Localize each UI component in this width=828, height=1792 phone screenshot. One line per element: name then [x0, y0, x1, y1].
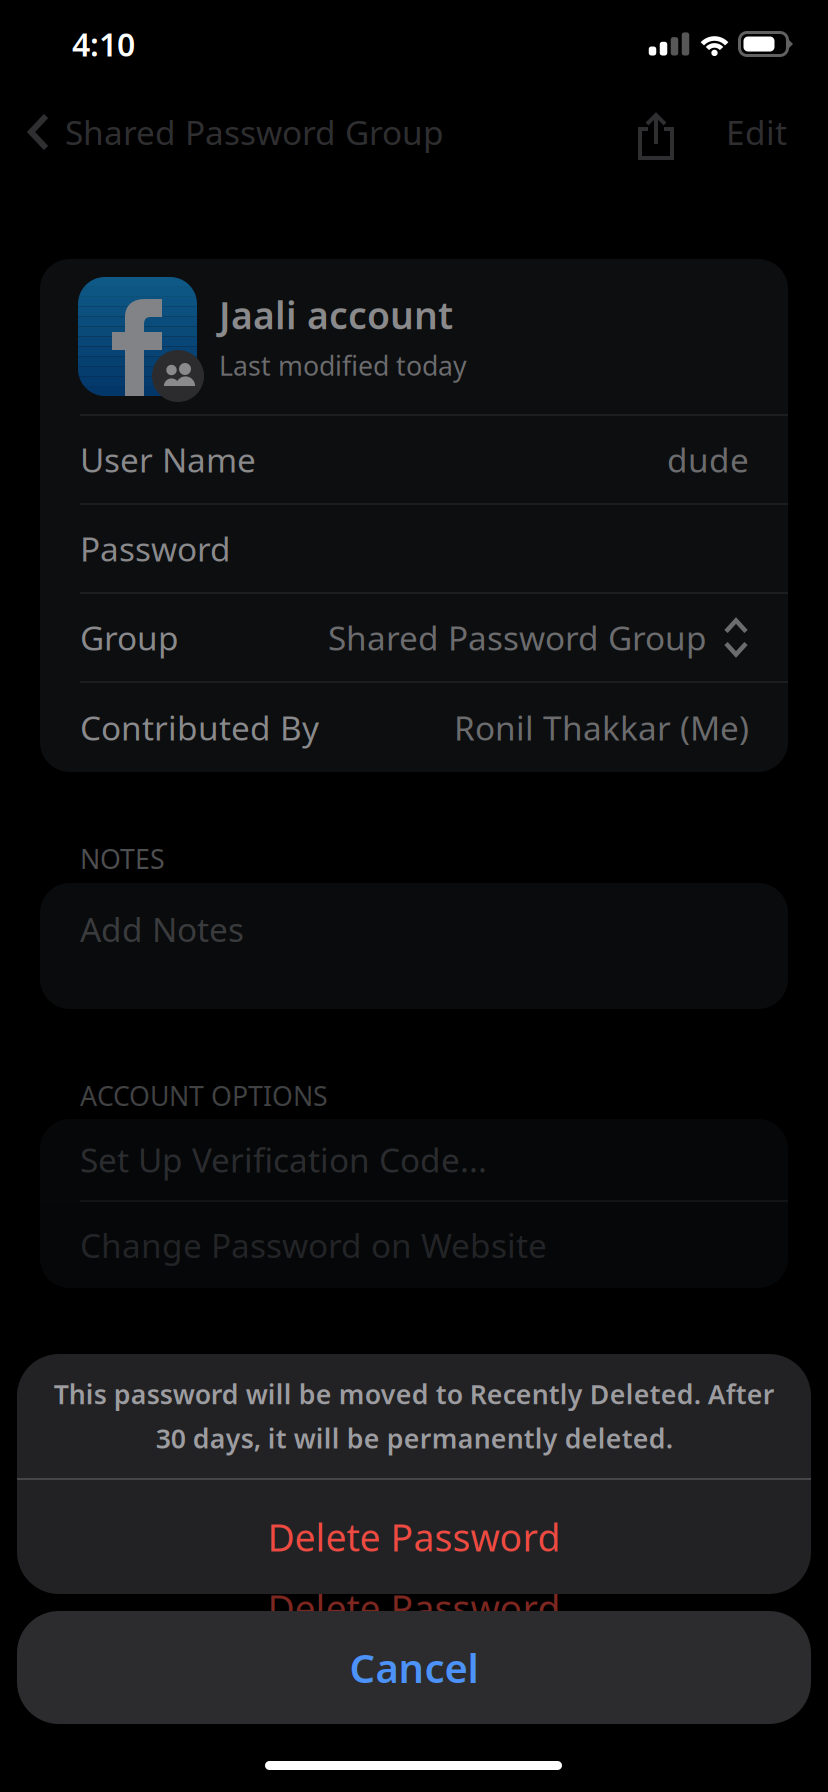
staticText: Edit	[726, 110, 787, 154]
button[interactable]: Change Password on Website	[40, 1202, 788, 1288]
button[interactable]: Group	[40, 594, 788, 681]
staticText: 4:10	[72, 23, 135, 65]
staticText: Change Password on Website	[80, 1223, 547, 1267]
staticText: User Name	[80, 437, 256, 482]
button[interactable]: Delete Password	[17, 1480, 811, 1594]
button[interactable]: Shared Password Group	[26, 110, 444, 154]
button[interactable]: Password	[40, 505, 788, 592]
staticText: Contributed By	[80, 705, 319, 750]
staticText: Password	[80, 526, 231, 571]
button[interactable]: Contributed By	[40, 683, 788, 772]
button[interactable]: Set Up Verification Code...	[40, 1119, 788, 1200]
button[interactable]: Cancel	[17, 1611, 811, 1724]
staticText: Group	[80, 615, 179, 660]
staticText: Shared Password Group	[65, 110, 444, 154]
staticText: dude	[667, 437, 749, 482]
staticText: ACCOUNT OPTIONS	[80, 1078, 328, 1098]
staticText: Ronil Thakkar (Me)	[454, 705, 749, 750]
button[interactable]: User Name	[40, 416, 788, 503]
staticText: NOTES	[80, 841, 165, 861]
staticText: Shared Password Group	[328, 615, 707, 660]
staticText: Delete Password	[267, 1512, 560, 1562]
staticText: Jaali account	[219, 290, 453, 340]
staticText: Add Notes	[80, 907, 244, 951]
button[interactable]: Edit	[682, 110, 787, 154]
staticText: Last modified today	[219, 348, 467, 383]
staticText: Set Up Verification Code...	[80, 1137, 487, 1182]
staticText: Cancel	[349, 1641, 478, 1694]
button[interactable]: Share	[635, 102, 682, 162]
staticText: Delete Password	[267, 1583, 560, 1633]
staticText: This password will be moved to Recently …	[53, 1376, 774, 1456]
